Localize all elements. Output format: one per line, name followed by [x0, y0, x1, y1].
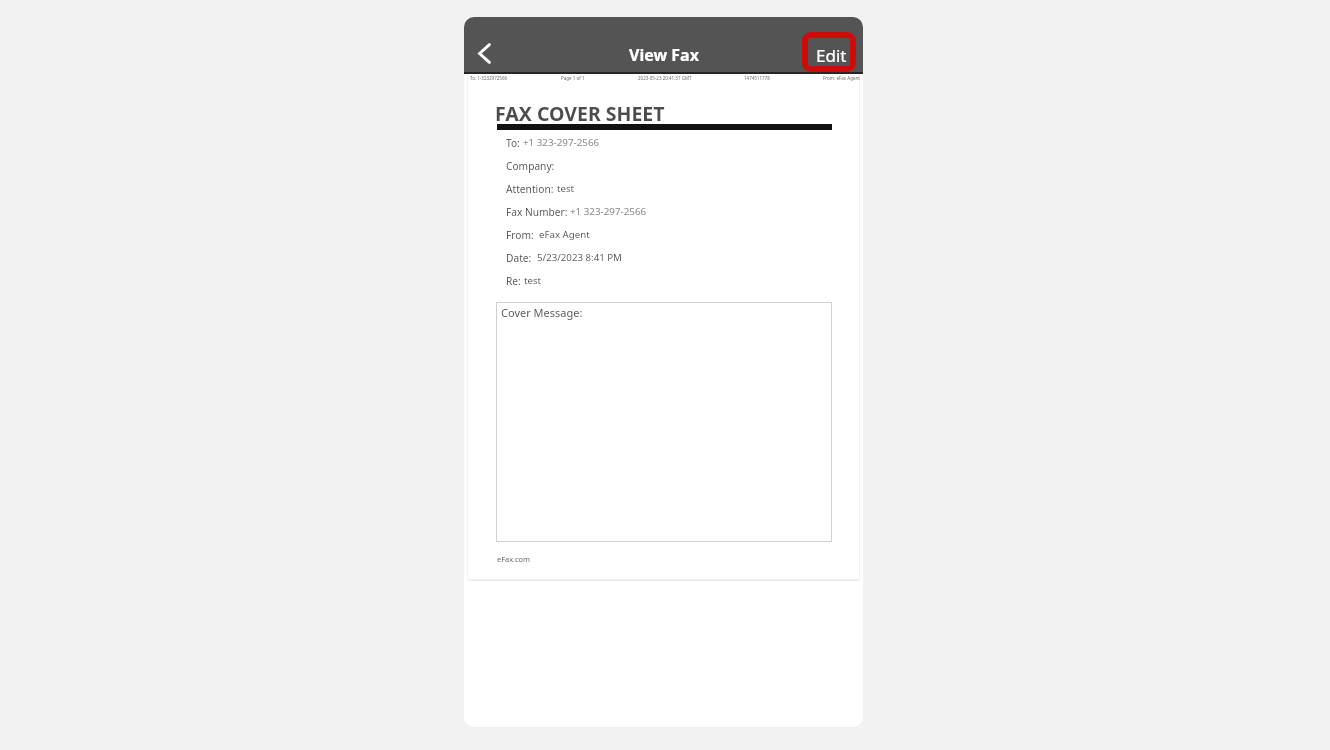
- button[interactable]: Edit: [816, 34, 847, 72]
- staticText: eFax Agent: [539, 228, 590, 241]
- staticText: From: eFax Agent: [823, 75, 860, 81]
- staticText: Re:: [506, 274, 521, 288]
- staticText: Attention:: [506, 182, 554, 196]
- staticText: 2023-05-23 20:41:37 GMT: [638, 75, 692, 81]
- staticText: Company:: [506, 159, 555, 173]
- staticText: test: [524, 274, 542, 287]
- staticText: Page 1 of 1: [561, 75, 585, 81]
- staticText: +1 323-297-2566: [523, 136, 600, 149]
- staticText: 5/23/2023 8:41 PM: [537, 251, 622, 264]
- staticText: Fax Number:: [506, 205, 568, 219]
- staticText: FAX COVER SHEET: [495, 100, 665, 127]
- staticText: eFax.com: [497, 554, 530, 564]
- staticText: View Fax: [629, 44, 699, 66]
- staticText: Cover Message:: [501, 305, 583, 320]
- staticText: test: [557, 182, 575, 195]
- staticText: Date:: [506, 251, 532, 265]
- staticText: From:: [506, 228, 534, 242]
- staticText: 1474511778: [744, 75, 770, 81]
- staticText: To: 1-3232972566: [470, 75, 508, 81]
- staticText: +1 323-297-2566: [570, 205, 647, 218]
- button[interactable]: Back: [465, 34, 503, 72]
- staticText: To:: [506, 136, 520, 150]
- staticText: Edit: [816, 44, 847, 67]
